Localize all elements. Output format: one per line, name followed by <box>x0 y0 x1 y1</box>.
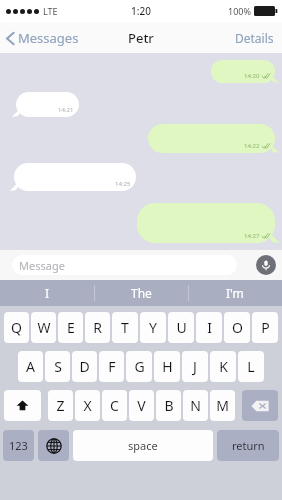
staticText: T <box>121 318 129 337</box>
staticText: Y <box>149 318 157 337</box>
button[interactable]: space <box>73 430 213 461</box>
button[interactable]: F <box>99 351 124 382</box>
staticText: S <box>54 357 62 376</box>
button[interactable]: return <box>217 430 279 461</box>
button[interactable]: C <box>102 390 127 421</box>
staticText: space <box>128 438 158 453</box>
button[interactable]: G <box>126 351 152 382</box>
button[interactable]: Details <box>227 25 282 51</box>
staticText: P <box>261 318 270 337</box>
staticText: A <box>26 357 35 376</box>
staticText: 123 <box>9 438 28 453</box>
button[interactable]: J <box>182 351 208 382</box>
staticText: E <box>67 318 75 337</box>
staticText: 14:25 <box>115 180 131 188</box>
button[interactable]: X <box>75 390 100 421</box>
staticText: I <box>45 285 50 301</box>
staticText: B <box>164 396 174 415</box>
button[interactable]: H <box>154 351 180 382</box>
button[interactable]: B <box>156 390 181 421</box>
staticText: L <box>247 357 255 376</box>
button[interactable]: Q <box>4 312 29 343</box>
button[interactable]: 123 <box>3 430 34 461</box>
staticText: Petr <box>128 29 154 47</box>
staticText: X <box>83 396 92 415</box>
staticText: Message <box>19 258 65 273</box>
staticText: F <box>108 357 116 376</box>
button[interactable]: E <box>58 312 83 343</box>
button[interactable]: K <box>210 351 236 382</box>
staticText: N <box>190 396 201 415</box>
staticText: I <box>207 318 212 337</box>
button[interactable]: U <box>168 312 194 343</box>
staticText: U <box>176 318 187 337</box>
button[interactable]: P <box>252 312 278 343</box>
button[interactable]: Messages <box>0 25 85 51</box>
staticText: K <box>219 357 228 376</box>
staticText: Z <box>56 396 65 415</box>
button[interactable]: W <box>31 312 56 343</box>
button[interactable]: L <box>238 351 264 382</box>
staticText: Details <box>235 30 274 46</box>
staticText: 14:20 <box>244 72 260 80</box>
button[interactable]: Backspace <box>242 390 278 421</box>
button[interactable]: A <box>18 351 43 382</box>
button[interactable]: I'm <box>188 280 282 306</box>
staticText: return <box>232 438 265 453</box>
button[interactable]: Y <box>140 312 166 343</box>
button[interactable]: M <box>210 390 235 421</box>
staticText: The <box>131 285 152 301</box>
staticText: V <box>137 396 146 415</box>
button[interactable]: D <box>72 351 97 382</box>
button[interactable]: Z <box>48 390 73 421</box>
button[interactable]: The <box>94 280 188 306</box>
staticText: H <box>162 357 173 376</box>
staticText: LTE <box>43 5 58 17</box>
staticText: O <box>232 318 243 337</box>
button[interactable]: T <box>112 312 138 343</box>
button[interactable]: R <box>85 312 110 343</box>
staticText: I'm <box>226 285 244 301</box>
staticText: Q <box>11 318 22 337</box>
button[interactable]: Message <box>12 255 237 275</box>
button[interactable]: V <box>129 390 154 421</box>
staticText: 100% <box>228 5 251 17</box>
button[interactable]: Change keyboard <box>38 430 69 461</box>
staticText: W <box>37 318 51 337</box>
button[interactable]: Shift <box>4 390 41 421</box>
staticText: G <box>134 357 145 376</box>
staticText: M <box>216 396 229 415</box>
staticText: 14:22 <box>244 142 260 150</box>
button[interactable]: I <box>0 280 94 306</box>
staticText: J <box>193 357 197 376</box>
staticText: 1:20 <box>131 4 151 18</box>
staticText: R <box>93 318 102 337</box>
button[interactable]: Voice message <box>256 255 276 275</box>
button[interactable]: I <box>196 312 222 343</box>
staticText: C <box>110 396 119 415</box>
staticText: D <box>79 357 90 376</box>
staticText: 14:27 <box>244 232 260 240</box>
button[interactable]: O <box>224 312 250 343</box>
staticText: 14:21 <box>58 106 74 114</box>
button[interactable]: S <box>45 351 70 382</box>
staticText: Messages <box>18 29 79 47</box>
button[interactable]: N <box>183 390 208 421</box>
